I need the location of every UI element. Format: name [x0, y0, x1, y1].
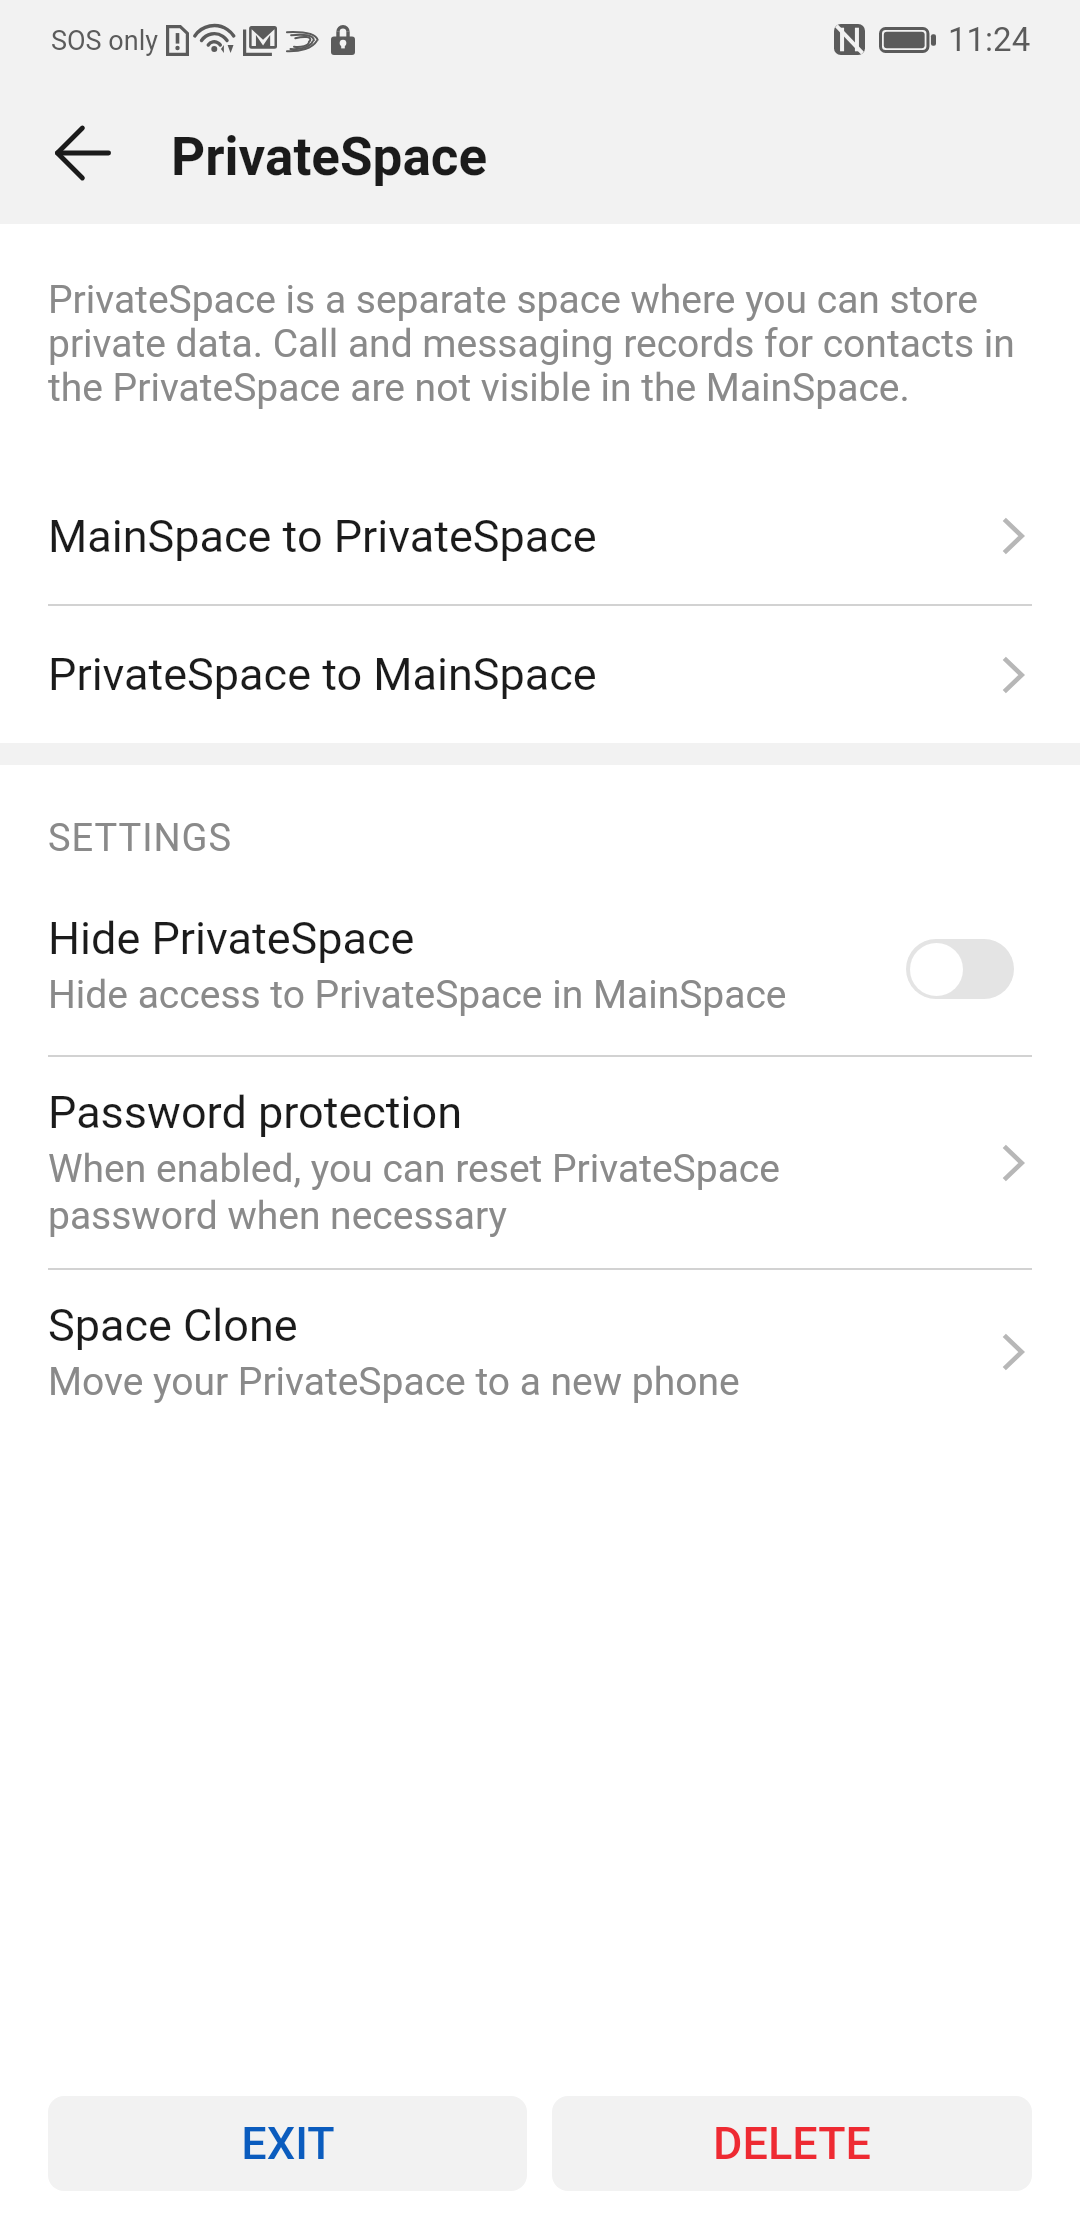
staticText: Space Clone: [48, 1299, 298, 1352]
button[interactable]: PrivateSpace to MainSpace: [0, 606, 1080, 743]
staticText: PrivateSpace is a separate space where y…: [48, 277, 1028, 410]
staticText: EXIT: [241, 2117, 335, 2170]
staticText: Hide PrivateSpace: [48, 912, 415, 965]
staticText: Move your PrivateSpace to a new phone: [48, 1359, 740, 1405]
staticText: When enabled, you can reset PrivateSpace…: [48, 1146, 802, 1239]
staticText: MainSpace to PrivateSpace: [48, 510, 1002, 563]
staticText: PrivateSpace to MainSpace: [48, 648, 1002, 701]
button[interactable]: Hide PrivateSpace: [0, 875, 1080, 1055]
button[interactable]: EXIT: [48, 2096, 527, 2191]
button[interactable]: Back: [28, 98, 138, 208]
staticText: 11:24: [948, 20, 1031, 59]
button[interactable]: Space Clone: [0, 1270, 1080, 1433]
button[interactable]: MainSpace to PrivateSpace: [0, 468, 1080, 604]
button[interactable]: Hide PrivateSpace toggle: [906, 939, 1014, 999]
staticText: DELETE: [713, 2117, 871, 2170]
staticText: SOS only: [51, 25, 158, 57]
staticText: SETTINGS: [48, 816, 233, 861]
staticText: Password protection: [48, 1086, 462, 1139]
button[interactable]: Password protection: [0, 1057, 1080, 1268]
staticText: PrivateSpace: [171, 126, 488, 188]
staticText: Hide access to PrivateSpace in MainSpace: [48, 972, 787, 1018]
button[interactable]: DELETE: [552, 2096, 1032, 2191]
